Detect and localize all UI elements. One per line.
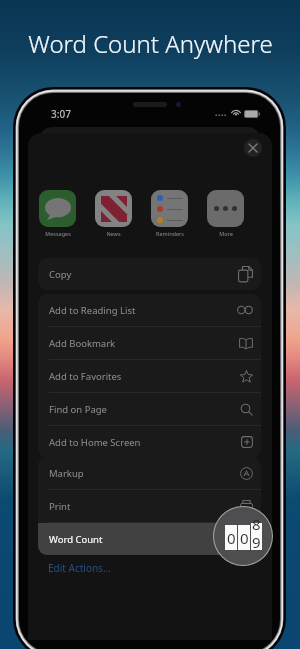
staticText: 0 [240,528,249,548]
staticText: Copy [49,268,72,281]
button[interactable]: Copy [38,258,261,290]
button[interactable]: Close [244,139,262,157]
staticText: Word Count [49,533,103,546]
button[interactable]: Add to Favorites [38,360,261,392]
button[interactable]: Messages [39,190,76,237]
button[interactable]: Find on Page [38,393,261,425]
staticText: Add to Favorites [49,370,122,383]
button[interactable]: Add Bookmark [38,327,261,359]
staticText: News [106,230,121,237]
staticText: Print [49,500,71,513]
staticText: Add to Home Screen [49,436,141,449]
staticText: Find on Page [49,403,107,416]
button[interactable]: Add to Reading List [38,294,261,326]
staticText: Edit Actions... [48,561,111,575]
staticText: 3:07 [51,107,71,121]
staticText: Add Bookmark [49,337,116,350]
staticText: Add to Reading List [49,304,136,317]
staticText: Markup [49,467,84,480]
staticText: 9 [252,532,261,552]
staticText: More [219,230,233,237]
staticText: Messages [45,230,71,237]
button[interactable]: More [207,190,244,237]
button[interactable]: Markup [38,457,261,489]
button[interactable]: News [95,190,132,237]
button[interactable]: Word Count [38,523,261,555]
button[interactable]: Add to Home Screen [38,426,261,458]
staticText: 8 [252,514,261,534]
button[interactable]: Reminders [151,190,188,237]
button[interactable]: Edit Actions... [48,558,111,577]
staticText: 0 [227,528,236,548]
staticText: Reminders [156,230,184,237]
button[interactable]: Print [38,490,261,522]
button[interactable]: Word Count [213,506,273,566]
staticText: Word Count Anywhere [28,27,273,60]
